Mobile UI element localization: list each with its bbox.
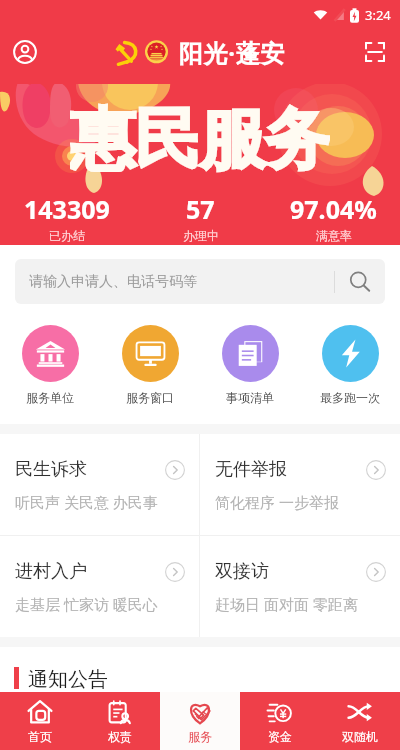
button[interactable]: Scan <box>361 38 389 66</box>
staticText: 进村入户 <box>15 560 87 583</box>
staticText: 听民声 关民意 办民事 <box>15 492 158 512</box>
staticText: 首页 <box>28 729 52 744</box>
staticText: 赶场日 面对面 零距离 <box>215 594 358 614</box>
button[interactable]: 民生诉求 <box>0 434 199 535</box>
button[interactable]: 最多跑一次 <box>300 325 400 405</box>
button[interactable]: Profile <box>11 38 39 66</box>
button[interactable]: 双随机 <box>320 692 400 750</box>
button[interactable]: 请输入申请人、电话号码等 <box>15 259 385 304</box>
staticText: 57 <box>186 192 215 226</box>
staticText: 惠民服务 <box>70 98 330 176</box>
staticText: 已办结 <box>49 228 85 243</box>
staticText: 双随机 <box>342 729 378 744</box>
staticText: 简化程序 一步举报 <box>215 492 339 512</box>
staticText: 最多跑一次 <box>320 390 380 405</box>
staticText: 满意率 <box>316 228 352 243</box>
staticText: 通知公告 <box>28 667 108 692</box>
staticText: 资金 <box>268 729 292 744</box>
staticText: 服务 <box>188 729 212 744</box>
button[interactable]: 服务 <box>160 692 240 750</box>
staticText: 3:24 <box>365 6 391 24</box>
staticText: 服务窗口 <box>126 390 174 405</box>
staticText: 请输入申请人、电话号码等 <box>29 273 197 291</box>
staticText: 办理中 <box>183 228 219 243</box>
staticText: 无件举报 <box>215 458 287 481</box>
staticText: 143309 <box>24 192 110 226</box>
button[interactable]: 资金 <box>240 692 320 750</box>
button[interactable]: 无件举报 <box>200 434 400 535</box>
staticText: 阳光·蓬安 <box>179 36 285 69</box>
staticText: 走基层 忙家访 暖民心 <box>15 594 158 614</box>
staticText: 服务单位 <box>26 390 74 405</box>
button[interactable]: 服务窗口 <box>100 325 200 405</box>
button[interactable]: 服务单位 <box>0 325 100 405</box>
staticText: 事项清单 <box>226 390 274 405</box>
button[interactable]: 权责 <box>80 692 160 750</box>
staticText: 双接访 <box>215 560 269 583</box>
button[interactable]: 首页 <box>0 692 80 750</box>
staticText: 97.04% <box>290 192 377 226</box>
button[interactable]: 事项清单 <box>200 325 300 405</box>
staticText: 民生诉求 <box>15 458 87 481</box>
staticText: 权责 <box>108 729 132 744</box>
button[interactable]: 进村入户 <box>0 536 199 637</box>
button[interactable]: 双接访 <box>200 536 400 637</box>
